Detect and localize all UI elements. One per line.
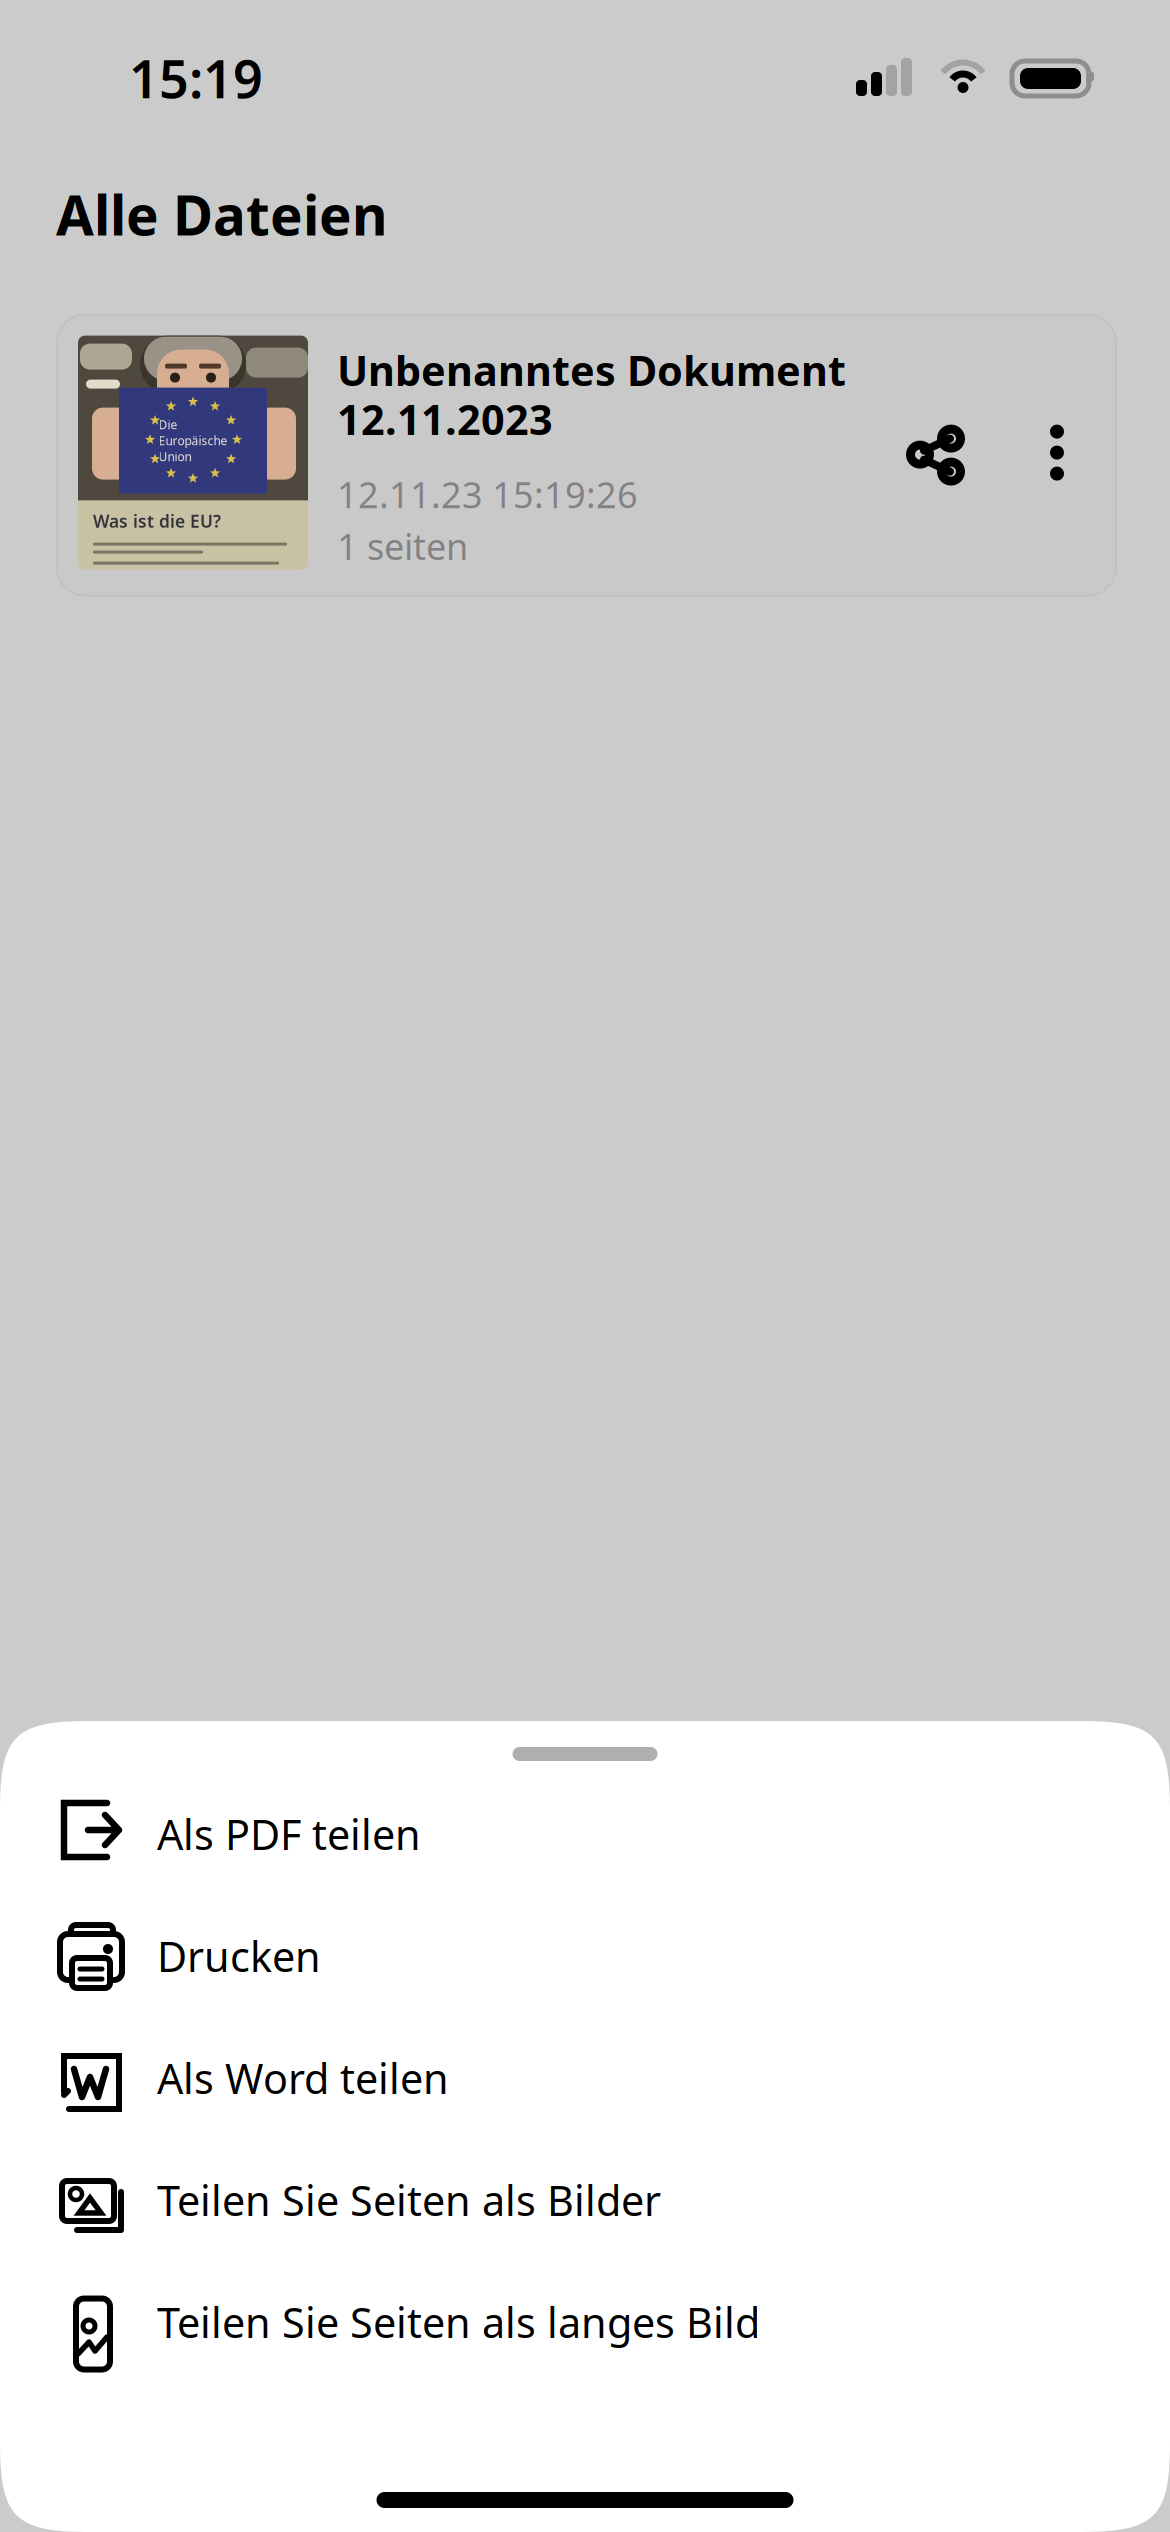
staticText: Alle Dateien bbox=[56, 178, 388, 251]
staticText: Was ist die EU? bbox=[93, 510, 221, 533]
button[interactable]: Teilen Sie Seiten als Bilder bbox=[0, 2139, 1170, 2261]
button[interactable]: Als PDF teilen bbox=[0, 1773, 1170, 1895]
button[interactable]: Als Word teilen bbox=[0, 2017, 1170, 2139]
button[interactable]: Teilen bbox=[877, 385, 997, 525]
staticText: 1 seiten bbox=[337, 522, 468, 570]
button[interactable]: Teilen Sie Seiten als langes Bild bbox=[0, 2261, 1170, 2383]
button[interactable]: Drucken bbox=[0, 1895, 1170, 2017]
staticText: 12.11.23 15:19:26 bbox=[337, 470, 638, 518]
button[interactable]: Mehr bbox=[1009, 383, 1105, 523]
staticText: Drucken bbox=[157, 1929, 321, 1983]
staticText: Teilen Sie Seiten als langes Bild bbox=[157, 2295, 760, 2349]
staticText: Als Word teilen bbox=[157, 2051, 449, 2105]
staticText: Unbenanntes Dokument bbox=[337, 343, 846, 397]
staticText: 12.11.2023 bbox=[337, 391, 553, 446]
staticText: Als PDF teilen bbox=[157, 1807, 421, 1861]
staticText: Teilen Sie Seiten als Bilder bbox=[157, 2173, 661, 2227]
staticText: 15:19 bbox=[129, 43, 263, 113]
staticText: Die Europäische Union bbox=[158, 417, 227, 464]
